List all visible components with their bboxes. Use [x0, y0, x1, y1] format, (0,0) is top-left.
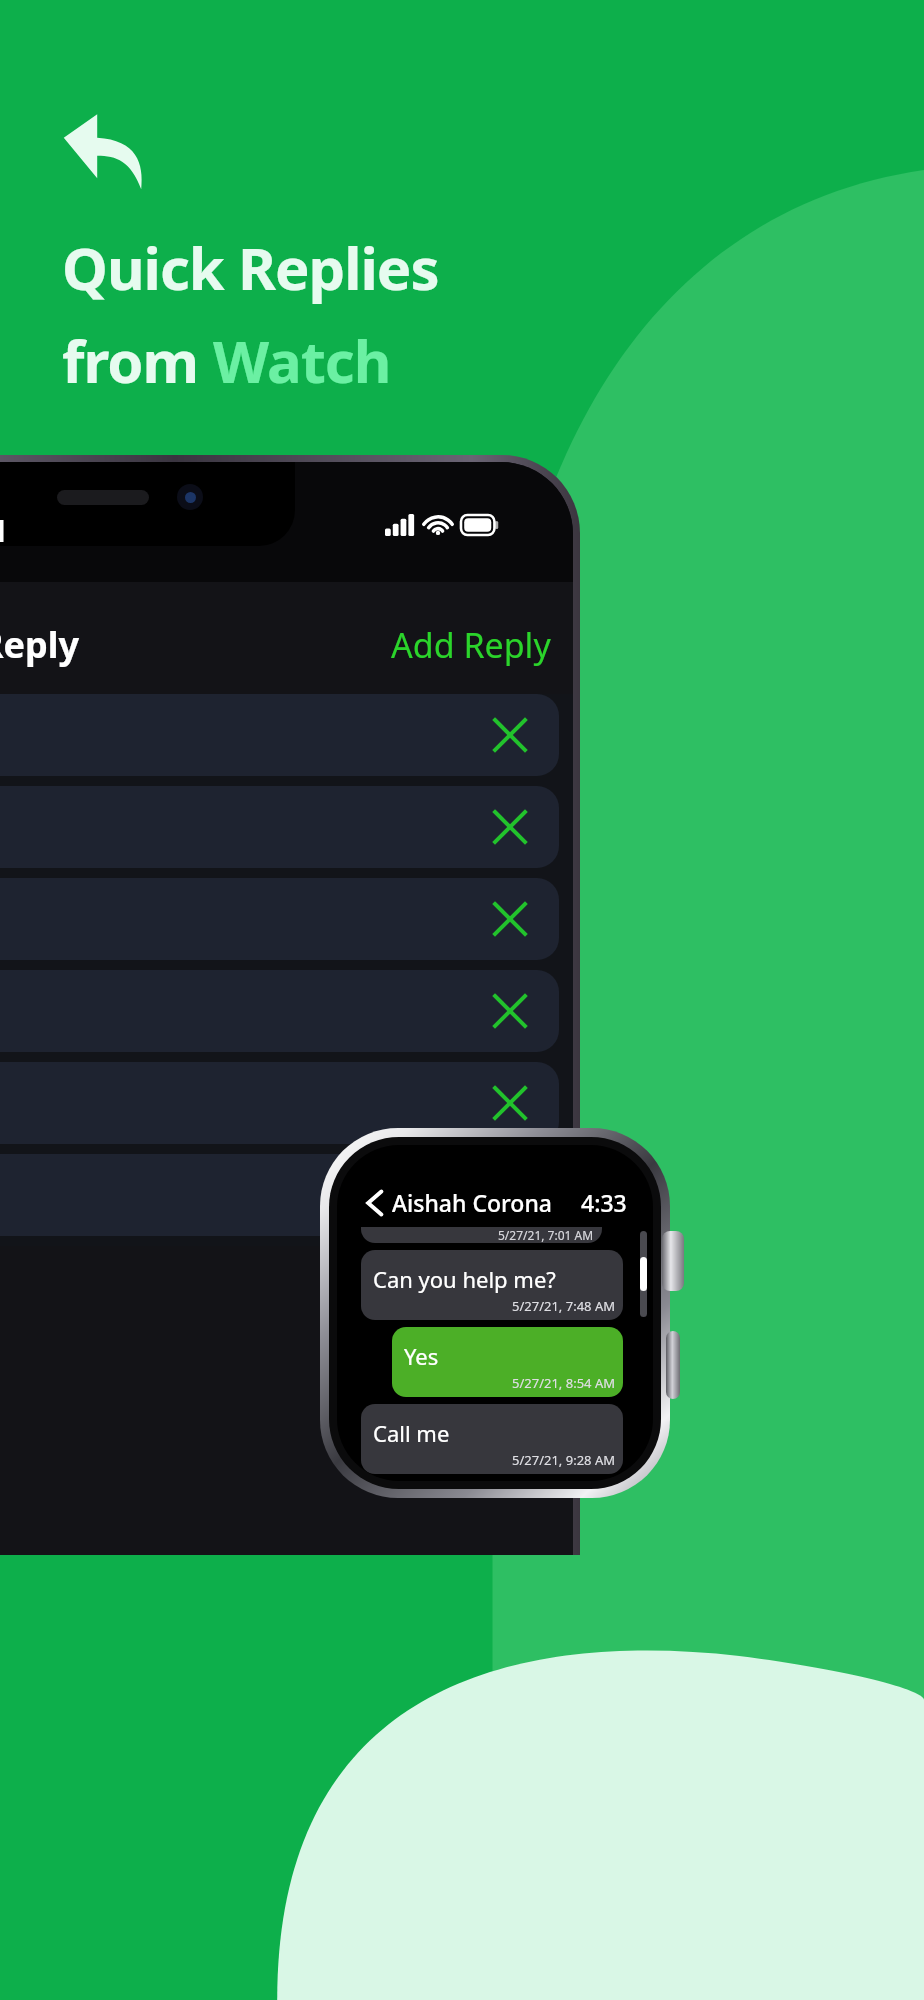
button[interactable]: OK	[0, 1062, 559, 1144]
staticText: 5/27/21, 8:54 AM	[512, 1374, 615, 1392]
staticText: Yes	[404, 1341, 439, 1371]
button[interactable]: Delete reply	[487, 804, 533, 850]
staticText: Call me	[373, 1418, 450, 1448]
button[interactable]: Add Reply	[369, 612, 573, 678]
staticText: 5/27/21, 7:48 AM	[512, 1297, 615, 1315]
staticText: Reply	[0, 620, 80, 669]
button[interactable]: Hi, Good	[0, 694, 559, 776]
button[interactable]: Yes	[392, 1327, 623, 1397]
staticText: Aishah Corona	[392, 1187, 552, 1218]
button[interactable]: Delete reply	[487, 712, 533, 758]
button[interactable]: Hahaha	[0, 1154, 559, 1236]
button[interactable]: Call me	[361, 1404, 623, 1474]
button[interactable]: Done	[0, 786, 559, 868]
button[interactable]: Reply	[62, 112, 150, 190]
staticText: 5/27/21, 7:01 AM	[498, 1227, 594, 1243]
button[interactable]: Delete reply	[487, 1080, 533, 1126]
button[interactable]: Back	[365, 1190, 385, 1216]
button[interactable]: Side button	[666, 1331, 680, 1399]
staticText: Can you help me?	[373, 1264, 556, 1294]
button[interactable]: Delete reply	[487, 896, 533, 942]
button[interactable]: Cool!	[0, 878, 559, 960]
staticText: 4:33	[581, 1187, 627, 1218]
staticText: 9:41	[0, 510, 9, 551]
staticText: Watch	[213, 321, 391, 400]
staticText: Add Reply	[391, 622, 551, 668]
staticText: 5/27/21, 9:28 AM	[512, 1451, 615, 1469]
button[interactable]: Digital crown	[662, 1231, 684, 1291]
button[interactable]: Delete reply	[487, 988, 533, 1034]
staticText: Quick Replies	[62, 228, 439, 307]
button[interactable]: Can you help me?	[361, 1250, 623, 1320]
button[interactable]: Thanks	[0, 970, 559, 1052]
staticText: from	[62, 321, 213, 400]
